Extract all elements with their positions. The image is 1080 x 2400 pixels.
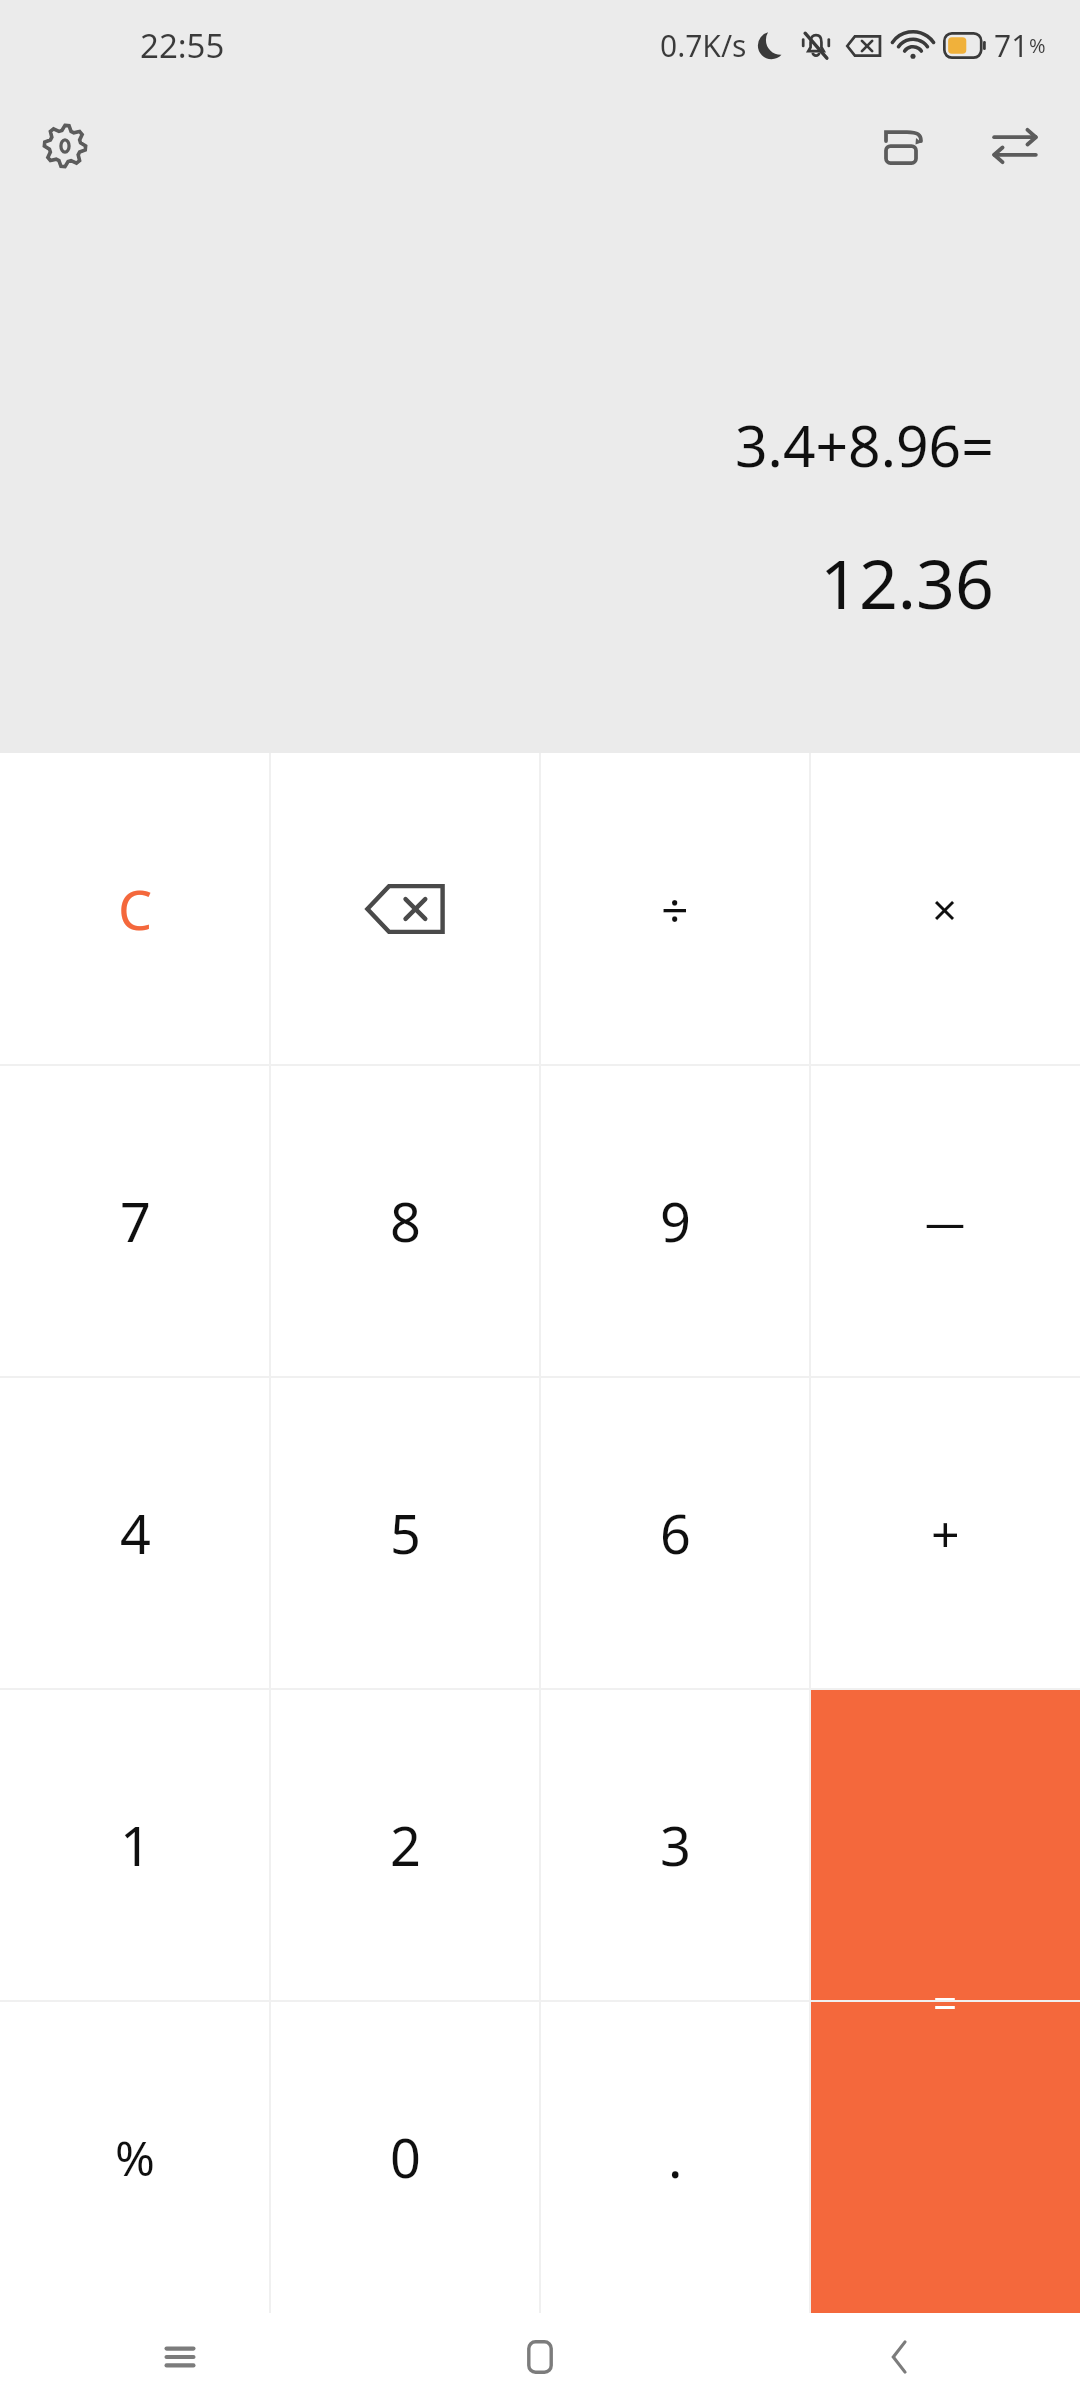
button[interactable]: Back xyxy=(720,2313,1080,2400)
staticText: 22:55 xyxy=(140,23,225,68)
button[interactable]: Settings xyxy=(22,103,108,189)
staticText: 2 xyxy=(390,1808,421,1882)
button[interactable]: C xyxy=(0,753,270,1065)
button[interactable]: Home xyxy=(360,2313,720,2400)
staticText: 3.4+8.96= xyxy=(735,406,994,484)
staticText: 0 xyxy=(390,2120,421,2194)
staticText: 71 xyxy=(994,25,1029,66)
button[interactable]: 7 xyxy=(0,1065,270,1377)
button[interactable]: 4 xyxy=(0,1377,270,1689)
button[interactable]: Unit convert xyxy=(972,103,1058,189)
staticText: 5 xyxy=(390,1496,421,1570)
button[interactable]: 0 xyxy=(270,2001,540,2313)
staticText: C xyxy=(118,872,153,946)
button[interactable]: % xyxy=(0,2001,270,2313)
staticText: 1 xyxy=(120,1808,151,1882)
button[interactable]: 5 xyxy=(270,1377,540,1689)
button[interactable]: History xyxy=(860,103,946,189)
staticText: = xyxy=(933,1973,958,2030)
button[interactable]: 2 xyxy=(270,1689,540,2001)
button[interactable]: = xyxy=(810,1689,1080,2313)
button[interactable]: + xyxy=(810,1377,1080,1689)
staticText: 9 xyxy=(660,1184,691,1258)
button[interactable]: — xyxy=(810,1065,1080,1377)
staticText: 4 xyxy=(120,1496,151,1570)
staticText: 3 xyxy=(660,1808,691,1882)
button[interactable]: . xyxy=(540,2001,810,2313)
staticText: × xyxy=(932,879,958,939)
staticText: % xyxy=(1029,32,1046,59)
staticText: 6 xyxy=(660,1496,691,1570)
staticText: 8 xyxy=(390,1184,421,1258)
button[interactable]: 9 xyxy=(540,1065,810,1377)
staticText: . xyxy=(668,2120,683,2194)
staticText: 0.7K/s xyxy=(660,25,747,66)
staticText: 12.36 xyxy=(820,536,994,629)
button[interactable]: 6 xyxy=(540,1377,810,1689)
button[interactable]: 3 xyxy=(540,1689,810,2001)
staticText: 7 xyxy=(120,1184,151,1258)
button[interactable]: 1 xyxy=(0,1689,270,2001)
button[interactable]: 8 xyxy=(270,1065,540,1377)
button[interactable]: × xyxy=(810,753,1080,1065)
staticText: + xyxy=(931,1499,960,1567)
button[interactable]: Recent apps xyxy=(0,2313,360,2400)
staticText: % xyxy=(115,2125,155,2190)
button[interactable]: ÷ xyxy=(540,753,810,1065)
staticText: ÷ xyxy=(661,877,689,942)
button[interactable]: Backspace xyxy=(270,753,540,1065)
staticText: — xyxy=(925,1194,965,1248)
